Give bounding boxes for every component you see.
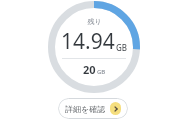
staticText: GB	[116, 42, 128, 53]
staticText: 20	[83, 62, 96, 77]
staticText: 14.94	[61, 27, 115, 56]
staticText: 残り	[87, 17, 102, 26]
staticText: GB	[97, 68, 106, 76]
staticText: 詳細を確認	[65, 104, 106, 114]
other: 詳細を確認	[110, 102, 121, 115]
button[interactable]: 詳細を確認	[58, 98, 128, 119]
